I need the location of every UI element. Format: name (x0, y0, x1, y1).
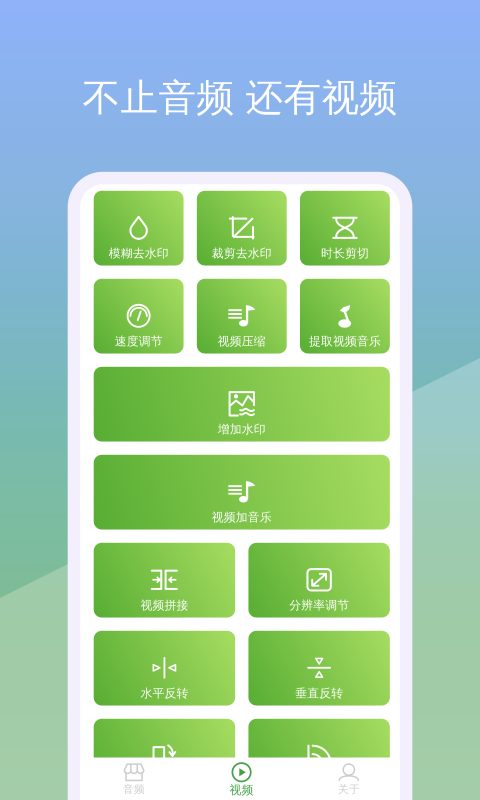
staticText: 水平反转 (140, 686, 188, 701)
button[interactable]: 关于 (295, 757, 403, 800)
button[interactable]: 提取视频音乐 (300, 279, 390, 353)
staticText: 垂直反转 (295, 686, 343, 701)
button[interactable]: 视频压缩 (197, 279, 287, 353)
button[interactable]: 视频拼接 (94, 543, 235, 617)
staticText: 不止音频 还有视频 (82, 74, 397, 122)
staticText: 视频拼接 (140, 598, 188, 613)
staticText: 音频 (123, 782, 145, 796)
staticText: 提取视频音乐 (309, 334, 381, 349)
staticText: 分辨率调节 (289, 598, 349, 613)
staticText: 时长剪切 (321, 246, 369, 261)
staticText: 视频压缩 (218, 334, 266, 349)
staticText: 裁剪去水印 (212, 246, 272, 261)
staticText: 视频 (230, 782, 254, 797)
button[interactable]: 模糊去水印 (94, 191, 183, 265)
staticText: 视频倒放 (295, 774, 343, 789)
button[interactable]: 垂直反转 (248, 631, 390, 705)
button[interactable]: 视频倒放 (248, 719, 390, 793)
button[interactable]: 速度调节 (94, 279, 183, 353)
staticText: 视频加音乐 (212, 510, 272, 525)
staticText: 旋转视频 (140, 774, 188, 789)
button[interactable]: 水平反转 (94, 631, 235, 705)
button[interactable]: 裁剪去水印 (197, 191, 287, 265)
button[interactable]: 旋转视频 (94, 719, 235, 793)
button[interactable]: 音频 (80, 757, 188, 800)
button[interactable]: 时长剪切 (300, 191, 390, 265)
staticText: 速度调节 (115, 334, 163, 349)
button[interactable]: 视频 (188, 757, 295, 800)
staticText: 关于 (338, 782, 360, 796)
button[interactable]: 分辨率调节 (248, 543, 390, 617)
staticText: 增加水印 (218, 422, 266, 437)
button[interactable]: 视频加音乐 (94, 455, 390, 529)
staticText: 模糊去水印 (109, 246, 169, 261)
button[interactable]: 增加水印 (94, 367, 390, 441)
